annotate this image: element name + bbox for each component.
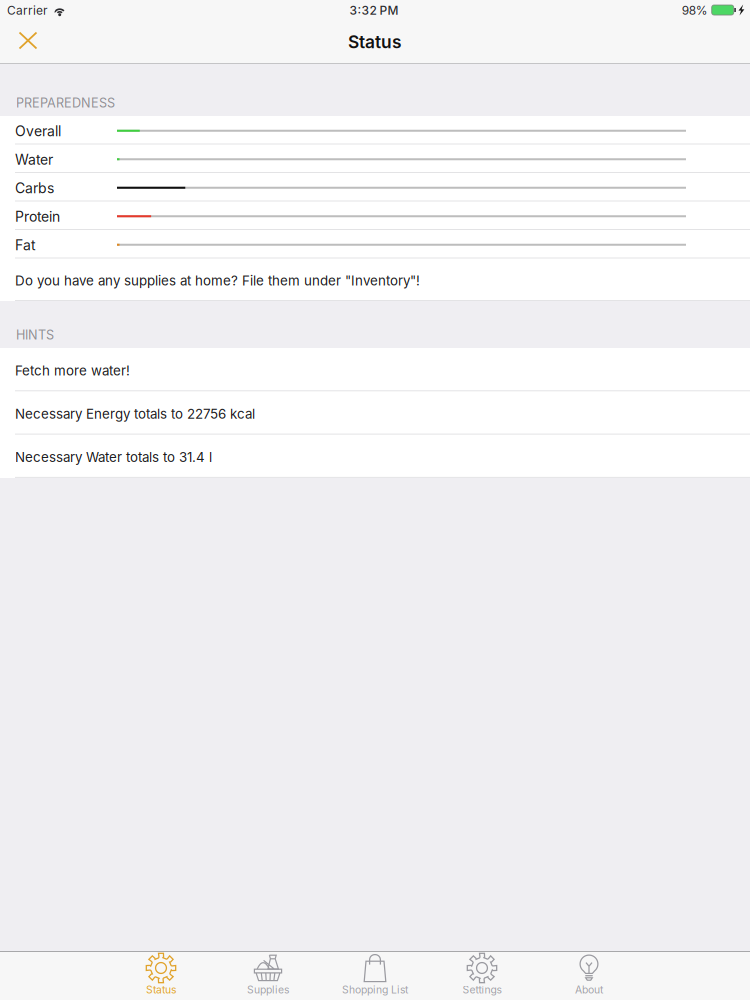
- staticText: Shopping List: [342, 983, 408, 996]
- staticText: PREPAREDNESS: [16, 95, 115, 110]
- button[interactable]: Close: [0, 20, 56, 63]
- staticText: Overall: [15, 123, 61, 140]
- staticText: About: [575, 983, 603, 996]
- button[interactable]: About: [535, 951, 642, 999]
- button[interactable]: Status: [107, 951, 214, 999]
- staticText: Status: [146, 983, 176, 996]
- button[interactable]: Supplies: [214, 951, 321, 999]
- staticText: Water: [15, 151, 53, 168]
- staticText: Carbs: [15, 180, 54, 197]
- button[interactable]: Shopping List: [321, 951, 428, 999]
- staticText: Necessary Energy totals to 22756 kcal: [15, 406, 255, 422]
- staticText: Fetch more water!: [15, 363, 130, 379]
- staticText: Do you have any supplies at home? File t…: [15, 273, 420, 289]
- staticText: Protein: [15, 208, 60, 225]
- staticText: Status: [348, 31, 402, 52]
- staticText: HINTS: [16, 327, 54, 342]
- staticText: 98%: [682, 3, 708, 18]
- staticText: Necessary Water totals to 31.4 l: [15, 449, 212, 465]
- staticText: Settings: [462, 983, 501, 996]
- staticText: Carrier: [7, 3, 48, 18]
- staticText: Supplies: [247, 983, 289, 996]
- staticText: 3:32 PM: [350, 3, 399, 18]
- button[interactable]: Settings: [428, 951, 535, 999]
- staticText: Fat: [15, 237, 36, 254]
